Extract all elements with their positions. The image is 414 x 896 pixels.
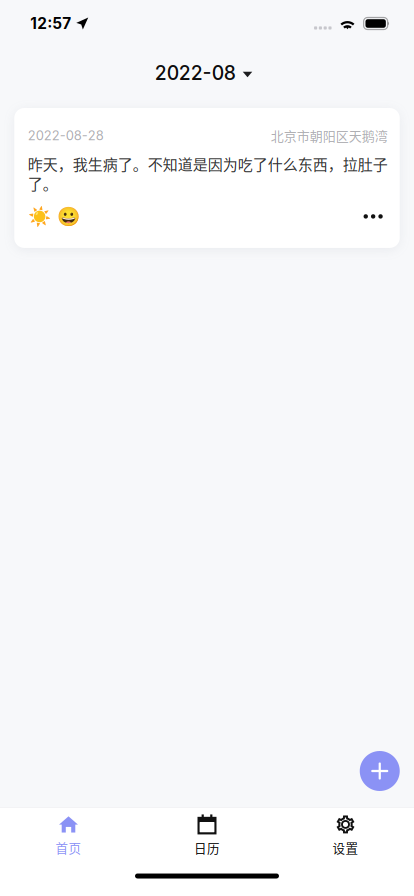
staticText: 日历 [194,838,220,856]
staticText: 12:57 [30,14,71,33]
button[interactable]: More options [343,203,388,229]
button[interactable]: 2022-08 [145,47,269,94]
button[interactable]: 日历 [138,803,276,864]
button[interactable]: Add entry [360,751,400,791]
staticText: 昨天，我生病了。不知道是因为吃了什么东西，拉肚子了。 [28,154,388,193]
button[interactable]: 设置 [276,803,414,864]
button[interactable]: 首页 [0,803,138,864]
staticText: 😀 [57,205,80,227]
staticText: 北京市朝阳区天鹅湾 [271,126,388,145]
staticText: 设置 [332,838,358,856]
staticText: 2022-08 [155,61,236,85]
staticText: ☀️ [28,205,51,227]
staticText: 2022-08-28 [28,127,104,143]
staticText: 首页 [55,838,81,856]
